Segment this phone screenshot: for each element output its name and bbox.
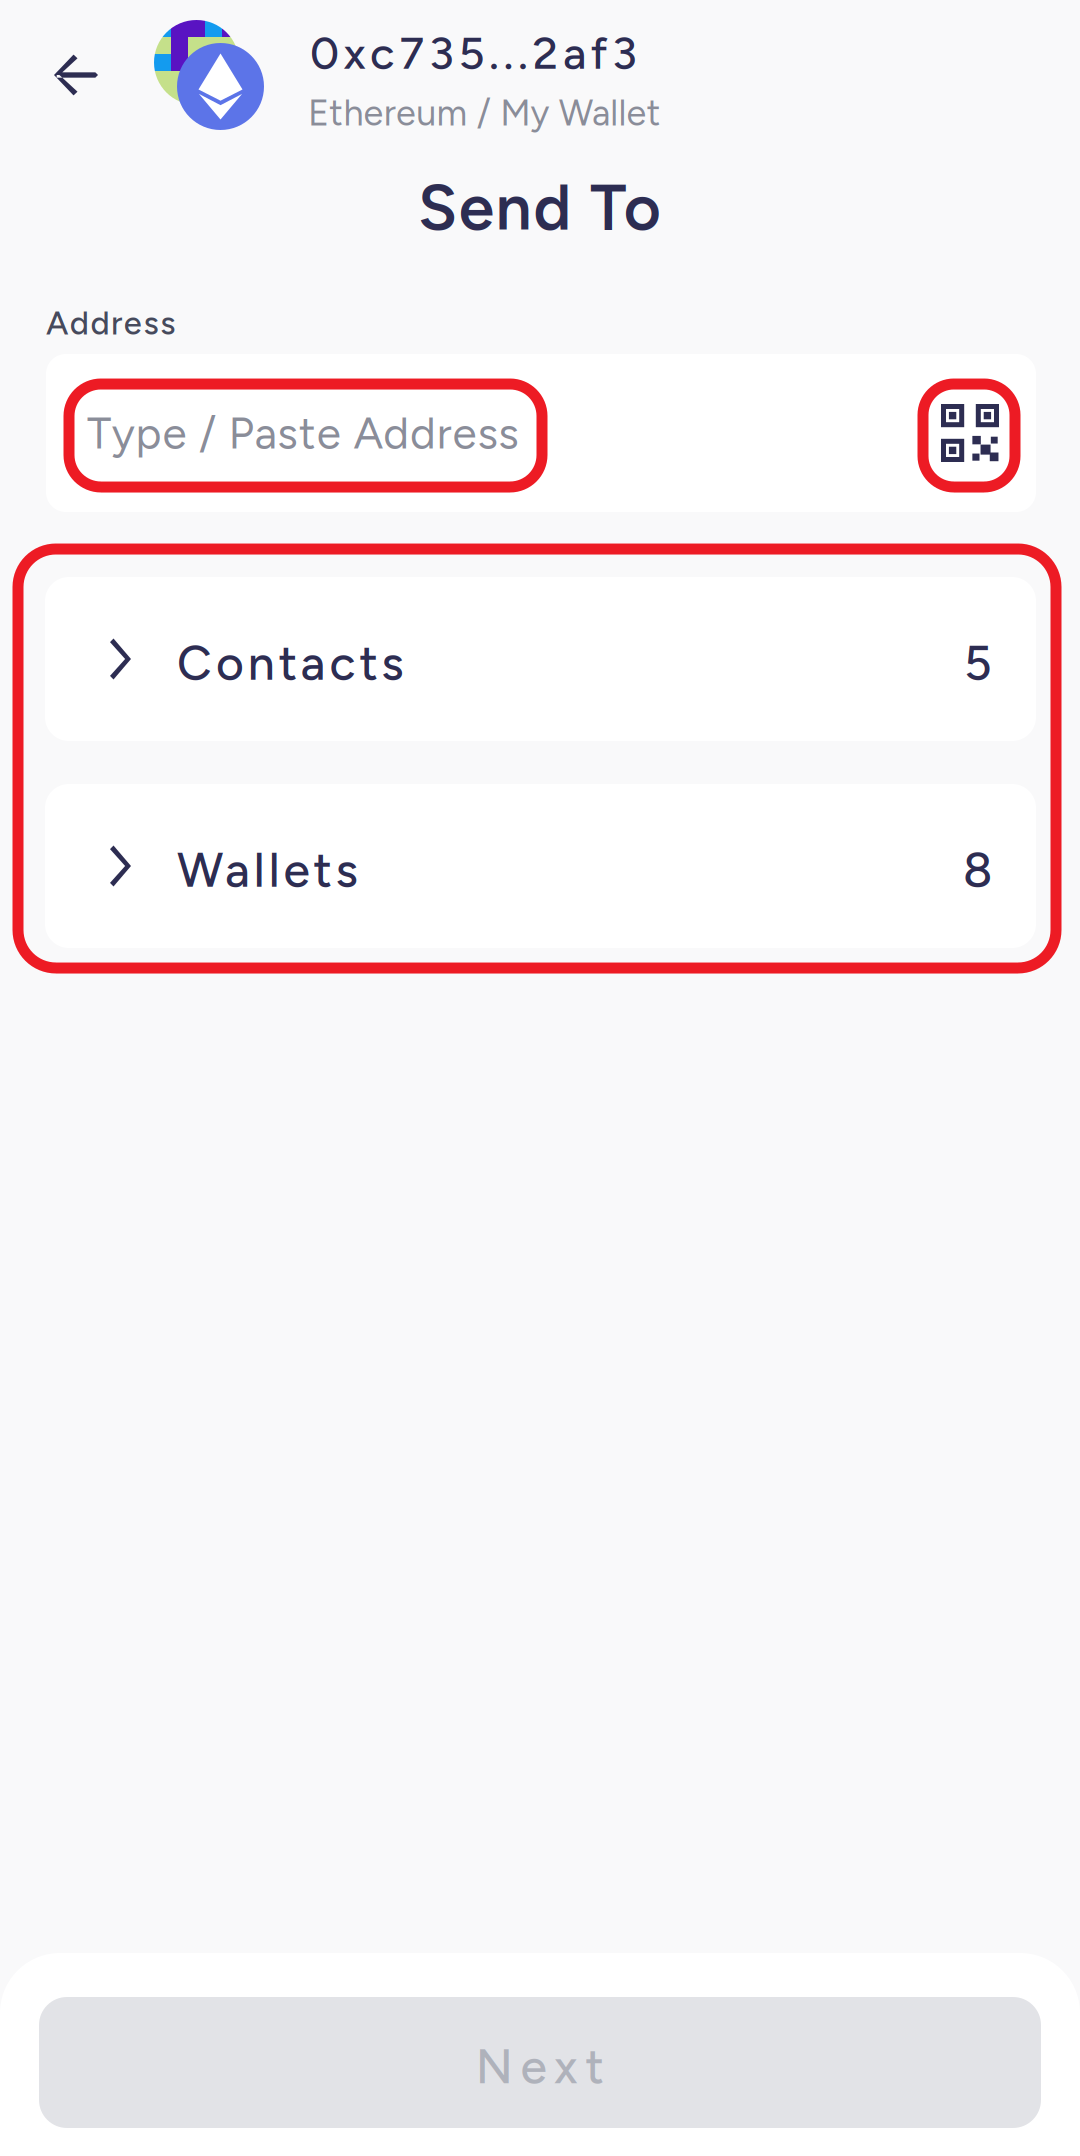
button[interactable]: Scan QR code — [924, 381, 1016, 484]
staticText: Type / Paste Address — [87, 407, 523, 459]
staticText: 8 — [963, 841, 992, 899]
button[interactable]: Wallets — [45, 784, 1036, 948]
staticText: 5 — [964, 634, 992, 692]
button[interactable]: Back — [32, 55, 142, 95]
staticText: Next — [476, 2038, 614, 2095]
staticText: Ethereum / My Wallet — [308, 91, 663, 135]
staticText: 0xc735...2af3 — [310, 26, 644, 80]
staticText: Contacts — [177, 634, 410, 692]
button[interactable]: Contacts — [45, 577, 1036, 741]
staticText: Send To — [418, 169, 667, 245]
staticText: Address — [46, 303, 179, 343]
staticText: Wallets — [177, 841, 364, 899]
button[interactable]: Next — [39, 1997, 1041, 2128]
